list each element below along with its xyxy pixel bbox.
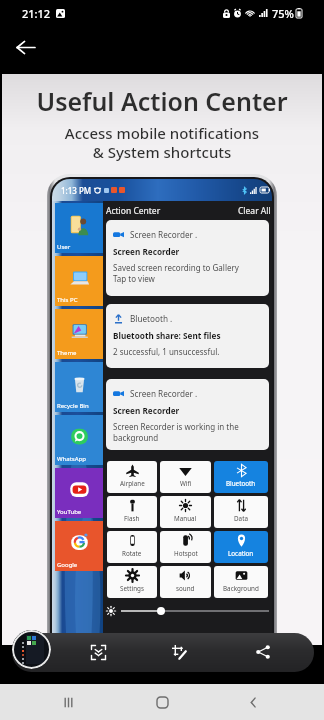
staticText: Access mobile notifications & System sho… [2,123,322,162]
staticText: Screen Recorder . [130,229,198,240]
staticText: Bluetooth share: Sent files [113,330,221,341]
button[interactable]: Settings [107,566,157,598]
button[interactable]: Back [235,684,271,720]
staticText: Google [57,561,78,569]
button[interactable]: Screen Recorder . [106,379,269,450]
button[interactable]: This PC [55,256,103,306]
staticText: Screen Recorder [113,405,180,416]
button[interactable]: Wifi [160,461,211,493]
staticText: Bluetooth [226,479,256,488]
button[interactable]: Theme [55,309,103,359]
button[interactable]: Crop and edit [162,635,196,669]
staticText: Saved screen recording to Gallery Tap to… [113,262,239,285]
button[interactable]: Location [214,531,268,563]
button[interactable]: Background [214,566,268,598]
button[interactable]: Bluetooth . [106,304,269,368]
staticText: Action Center [106,205,161,217]
button[interactable]: Screen Recorder . [106,220,269,296]
button[interactable]: Airplane [107,461,157,493]
staticText: Theme [57,349,77,357]
button[interactable]: Google [55,521,103,571]
staticText: Hotspot [174,549,198,558]
button[interactable]: Manual [160,496,211,528]
staticText: Screen Recorder is working in the backgr… [113,421,239,444]
staticText: Background [223,584,259,593]
button[interactable]: WhatsApp [55,415,103,465]
button[interactable]: Back [6,28,44,66]
button[interactable]: Home [144,684,180,720]
staticText: This PC [57,296,78,304]
button[interactable]: sound [160,566,211,598]
button[interactable]: Data [214,496,268,528]
staticText: Screen Recorder . [130,388,198,399]
staticText: YouTube [57,508,82,516]
staticText: 1:13 PM [61,185,92,196]
button[interactable]: Flash [107,496,157,528]
staticText: Airplane [120,479,145,488]
staticText: Screen Recorder [113,246,180,257]
staticText: 21:12 [22,6,51,21]
button[interactable]: Recents [50,684,86,720]
staticText: User [57,243,71,251]
button[interactable]: Share [246,635,280,669]
staticText: Data [234,514,248,523]
staticText: WhatsApp [57,455,86,463]
staticText: Settings [120,584,144,593]
button[interactable]: YouTube [55,468,103,518]
staticText: Manual [174,514,197,523]
staticText: Wifi [180,479,192,488]
button[interactable]: User [55,203,103,253]
staticText: 2 successful, 1 unsuccessful. [113,346,220,357]
staticText: Recycle Bin [57,402,89,410]
button[interactable]: Bluetooth [214,461,268,493]
staticText: Useful Action Center [2,84,322,118]
button[interactable]: Rotate [107,531,157,563]
staticText: 75% [272,6,294,21]
staticText: Flash [124,514,140,523]
staticText: Rotate [122,549,142,558]
staticText: sound [176,584,195,593]
button[interactable]: Hotspot [160,531,211,563]
button[interactable]: Recycle Bin [55,362,103,412]
button[interactable]: Scroll capture [81,635,115,669]
staticText: Bluetooth . [130,313,173,324]
button[interactable]: Screenshot preview [12,630,51,669]
staticText: Location [228,549,254,558]
staticText: Clear All [238,205,271,217]
